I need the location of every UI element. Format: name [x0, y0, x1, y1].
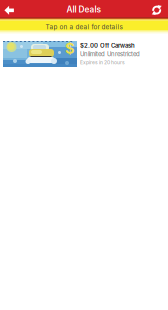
button[interactable]: $ — [0, 35, 168, 67]
staticText: $ — [65, 40, 75, 57]
staticText: $2.00 Off Carwash — [80, 42, 135, 49]
button[interactable]: Back — [0, 0, 19, 19]
staticText: Tap on a deal for details — [45, 23, 122, 31]
staticText: Unlimited Unrestricted — [80, 50, 140, 58]
staticText: All Deals — [66, 4, 101, 14]
button[interactable]: Refresh — [147, 0, 168, 19]
staticText: Expires in 20 hours — [80, 59, 125, 65]
